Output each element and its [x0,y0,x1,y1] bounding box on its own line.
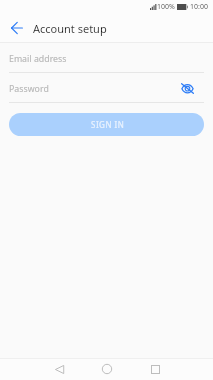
staticText: Email address [9,53,67,65]
button[interactable]: Back [49,359,69,379]
button[interactable]: Password [0,74,213,103]
button[interactable]: SIGN IN [9,113,204,136]
button[interactable]: Toggle password visibility [177,78,197,98]
button[interactable]: Back [3,14,31,42]
staticText: 10:00 [190,2,208,12]
staticText: SIGN IN [91,119,125,130]
button[interactable]: Home [97,359,117,379]
staticText: Password [9,83,49,95]
button[interactable]: Recent apps [145,359,165,379]
button[interactable]: Email address [0,44,213,73]
staticText: 100% [157,2,175,12]
staticText: Account setup [33,21,107,36]
